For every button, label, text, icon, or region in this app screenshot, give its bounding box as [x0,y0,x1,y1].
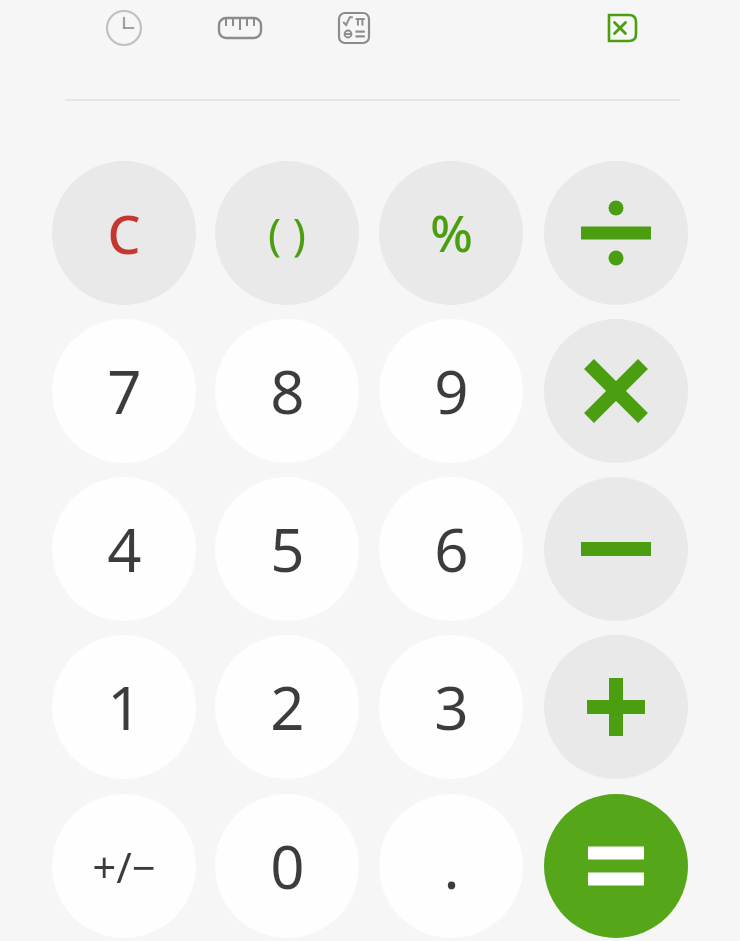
staticText: 2 [270,666,305,748]
button[interactable]: 6 [379,477,523,621]
staticText: 7 [107,350,142,432]
button[interactable]: 3 [379,635,523,779]
button[interactable]: ( ) [215,161,359,305]
staticText: 5 [270,508,305,590]
staticText: ( ) [268,203,306,263]
staticText: 6 [434,508,469,590]
button[interactable]: Unit converter [208,0,272,56]
staticText: . [443,825,460,907]
staticText: 0 [270,825,305,907]
button[interactable]: C [52,161,196,305]
button[interactable]: 8 [215,319,359,463]
button[interactable]: 2 [215,635,359,779]
button[interactable]: Minus [544,477,688,621]
button[interactable]: Backspace [584,0,648,56]
button[interactable]: +/− [52,794,196,938]
button[interactable]: Multiply [544,319,688,463]
button[interactable]: 0 [215,794,359,938]
staticText: 9 [434,350,469,432]
button[interactable]: Scientific calculator [322,0,386,56]
staticText: +/− [92,838,156,895]
button[interactable]: 4 [52,477,196,621]
button[interactable]: 1 [52,635,196,779]
staticText: % [430,199,473,267]
button[interactable]: Equals [544,794,688,938]
button[interactable]: Divide [544,161,688,305]
button[interactable]: 7 [52,319,196,463]
button[interactable]: . [379,794,523,938]
button[interactable]: History [92,0,156,56]
button[interactable]: Plus [544,635,688,779]
staticText: 4 [107,508,142,590]
button[interactable]: 9 [379,319,523,463]
staticText: 1 [107,666,142,748]
staticText: 8 [270,350,305,432]
button[interactable]: 5 [215,477,359,621]
staticText: 3 [434,666,469,748]
staticText: C [107,198,141,269]
button[interactable]: % [379,161,523,305]
